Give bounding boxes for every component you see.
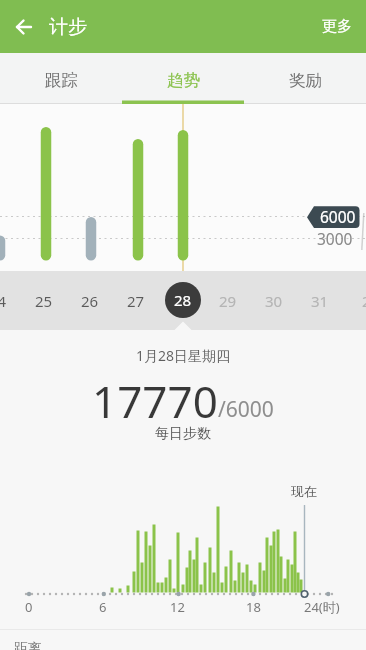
- button[interactable]: 更多: [322, 17, 352, 36]
- button[interactable]: 趋势: [122, 53, 244, 104]
- staticText: 30: [265, 291, 283, 311]
- staticText: 奖励: [289, 70, 322, 91]
- staticText: 31: [311, 291, 329, 311]
- button[interactable]: 2: [343, 271, 366, 330]
- button[interactable]: 29: [205, 271, 251, 330]
- staticText: /6000: [218, 395, 274, 424]
- button[interactable]: 跟踪: [0, 53, 122, 104]
- staticText: 24(时): [304, 598, 340, 616]
- button[interactable]: 31: [297, 271, 343, 330]
- button[interactable]: 27: [113, 271, 159, 330]
- staticText: 1月28日星期四: [136, 346, 231, 365]
- staticText: 29: [219, 291, 237, 311]
- button[interactable]: 奖励: [244, 53, 366, 104]
- button[interactable]: [14, 17, 34, 37]
- button[interactable]: 30: [251, 271, 297, 330]
- staticText: 25: [35, 291, 53, 311]
- staticText: 3000: [317, 228, 353, 249]
- staticText: 24: [0, 291, 7, 311]
- staticText: 26: [81, 291, 99, 311]
- staticText: 6000: [320, 206, 356, 227]
- staticText: 17770: [92, 371, 218, 431]
- staticText: 计步: [49, 15, 87, 39]
- staticText: 12: [170, 598, 185, 616]
- button[interactable]: 28: [165, 282, 201, 318]
- staticText: 6: [99, 598, 107, 616]
- button[interactable]: 26: [67, 271, 113, 330]
- staticText: 趋势: [167, 70, 200, 91]
- button[interactable]: 25: [21, 271, 67, 330]
- staticText: 18: [246, 598, 261, 616]
- staticText: 距离: [14, 640, 42, 650]
- staticText: 更多: [322, 17, 352, 36]
- staticText: 2: [362, 291, 366, 311]
- staticText: 跟踪: [45, 70, 78, 91]
- button[interactable]: 24: [0, 271, 21, 330]
- staticText: 28: [174, 290, 192, 310]
- staticText: 0: [25, 598, 33, 616]
- staticText: 27: [127, 291, 145, 311]
- staticText: 现在: [291, 483, 317, 499]
- staticText: 每日步数: [155, 425, 211, 443]
